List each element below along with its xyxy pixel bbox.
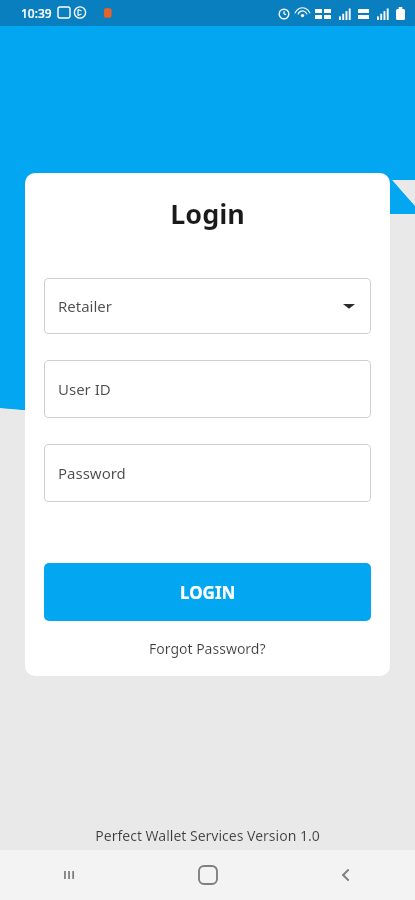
button[interactable]: Forgot Password? (141, 635, 274, 662)
staticText: Perfect Wallet Services Version 1.0 (95, 826, 320, 845)
staticText: Forgot Password? (149, 639, 266, 658)
button[interactable]: User ID (44, 360, 371, 418)
button[interactable]: Home (139, 850, 277, 900)
button[interactable]: Recent apps (0, 850, 139, 900)
button[interactable]: Retailer (44, 278, 371, 334)
button[interactable]: Back (277, 850, 415, 900)
staticText: Password (58, 463, 126, 483)
staticText: LOGIN (180, 581, 236, 604)
staticText: Retailer (58, 296, 113, 316)
staticText: 10:39 (21, 5, 52, 21)
button[interactable]: LOGIN (44, 563, 371, 621)
staticText: Login (170, 195, 245, 232)
button[interactable]: Password (44, 444, 371, 502)
staticText: User ID (58, 379, 111, 399)
